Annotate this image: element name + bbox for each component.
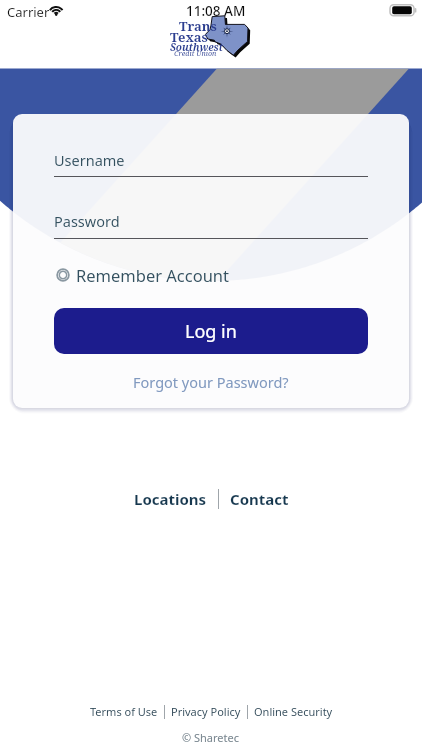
button[interactable]: Online Security	[254, 704, 333, 719]
button[interactable]: Forgot your Password?	[54, 372, 368, 392]
staticText: Terms of Use	[90, 704, 158, 719]
staticText: 11:08 AM	[186, 2, 246, 20]
staticText: Password	[54, 211, 120, 231]
staticText: Trans	[179, 17, 217, 35]
button[interactable]: Contact	[228, 489, 291, 509]
staticText: Forgot your Password?	[133, 372, 289, 392]
button[interactable]: Log in	[54, 308, 368, 354]
staticText: Remember Account	[76, 264, 230, 286]
staticText: Carrier	[7, 3, 50, 21]
staticText: Locations	[134, 489, 207, 509]
staticText: Privacy Policy	[171, 704, 241, 719]
button[interactable]: Terms of Use	[90, 704, 158, 719]
staticText: Credit Union	[174, 49, 217, 59]
button[interactable]: Privacy Policy	[171, 704, 241, 719]
staticText: © Sharetec	[182, 730, 240, 745]
staticText: Log in	[185, 319, 237, 344]
staticText: Southwest	[170, 40, 223, 54]
staticText: Username	[54, 150, 125, 170]
button[interactable]: Remember Account	[54, 262, 230, 288]
staticText: Online Security	[254, 704, 333, 719]
staticText: Contact	[230, 489, 289, 509]
staticText: Texas	[170, 28, 208, 46]
button[interactable]: Locations	[132, 489, 209, 509]
